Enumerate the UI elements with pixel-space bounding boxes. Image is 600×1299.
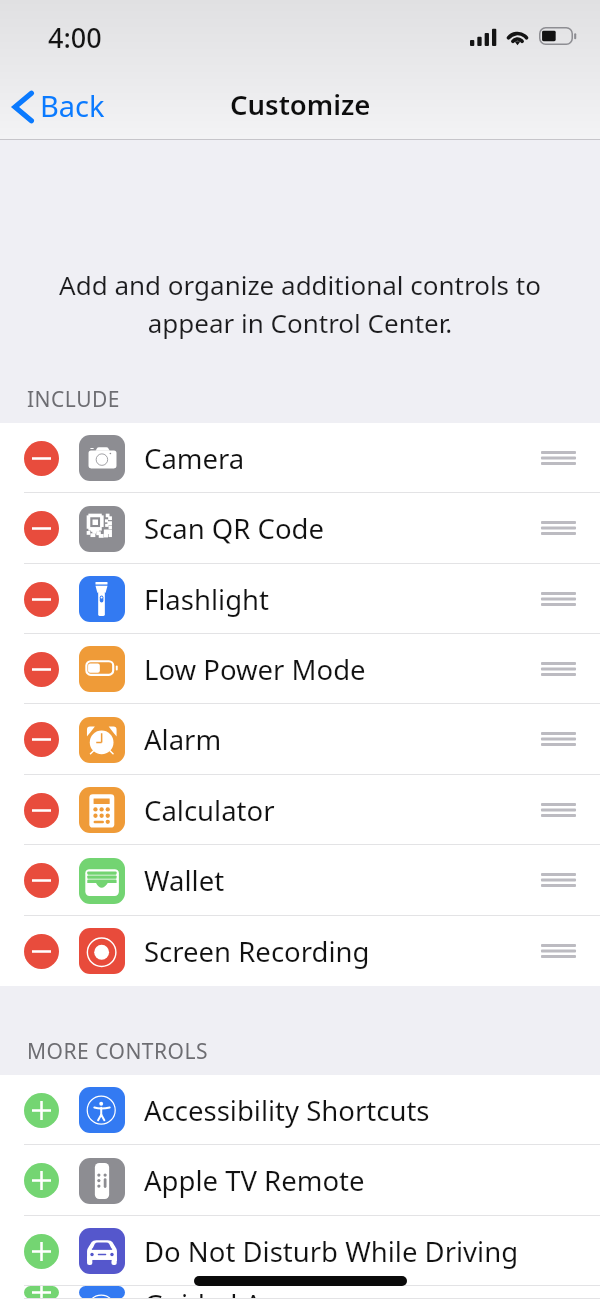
staticText: Flashlight bbox=[144, 581, 269, 618]
button[interactable]: Add Accessibility Shortcuts bbox=[24, 1093, 59, 1128]
button[interactable]: Add Do Not Disturb While Driving bbox=[0, 1216, 600, 1286]
button[interactable]: Add Guided Access bbox=[0, 1286, 600, 1299]
button[interactable]: Remove Wallet bbox=[24, 863, 59, 898]
button[interactable]: Add Accessibility Shortcuts bbox=[0, 1075, 600, 1145]
button[interactable]: Remove Scan QR Code bbox=[0, 493, 600, 564]
button[interactable]: Remove Camera bbox=[0, 423, 600, 493]
staticText: Wallet bbox=[144, 862, 225, 899]
staticText: Camera bbox=[144, 440, 245, 477]
button[interactable]: Remove Scan QR Code bbox=[24, 511, 59, 546]
button[interactable]: Remove Low Power Mode bbox=[24, 652, 59, 687]
staticText: Alarm bbox=[144, 721, 222, 758]
staticText: Scan QR Code bbox=[144, 510, 325, 547]
staticText: Guided Access bbox=[144, 1286, 331, 1299]
staticText: Calculator bbox=[144, 792, 275, 829]
button[interactable]: Remove Calculator bbox=[24, 793, 59, 828]
staticText: Do Not Disturb While Driving bbox=[144, 1233, 519, 1270]
button[interactable]: Remove Camera bbox=[24, 441, 59, 476]
staticText: 4:00 bbox=[48, 19, 102, 56]
staticText: Screen Recording bbox=[144, 933, 370, 970]
staticText: MORE CONTROLS bbox=[27, 1037, 209, 1066]
staticText: Customize bbox=[230, 86, 371, 123]
button[interactable]: Remove Screen Recording bbox=[0, 916, 600, 986]
button[interactable]: Remove Alarm bbox=[0, 704, 600, 775]
button[interactable]: Add Do Not Disturb While Driving bbox=[24, 1234, 59, 1269]
button[interactable]: Remove Wallet bbox=[0, 845, 600, 916]
button[interactable]: Back bbox=[0, 80, 119, 135]
button[interactable]: Remove Screen Recording bbox=[24, 934, 59, 969]
button[interactable]: Remove Alarm bbox=[24, 722, 59, 757]
staticText: INCLUDE bbox=[27, 385, 121, 414]
button[interactable]: Add Apple TV Remote bbox=[0, 1145, 600, 1216]
button[interactable]: Remove Calculator bbox=[0, 775, 600, 845]
button[interactable]: Add Guided Access bbox=[24, 1286, 59, 1299]
staticText: Accessibility Shortcuts bbox=[144, 1092, 430, 1129]
staticText: Apple TV Remote bbox=[144, 1162, 365, 1199]
staticText: Back bbox=[40, 86, 105, 125]
button[interactable]: Remove Flashlight bbox=[0, 564, 600, 634]
button[interactable]: Add Apple TV Remote bbox=[24, 1163, 59, 1198]
button[interactable]: Remove Flashlight bbox=[24, 582, 59, 617]
staticText: Add and organize additional controls to … bbox=[40, 267, 560, 340]
staticText: Low Power Mode bbox=[144, 651, 366, 688]
button[interactable]: Remove Low Power Mode bbox=[0, 634, 600, 704]
